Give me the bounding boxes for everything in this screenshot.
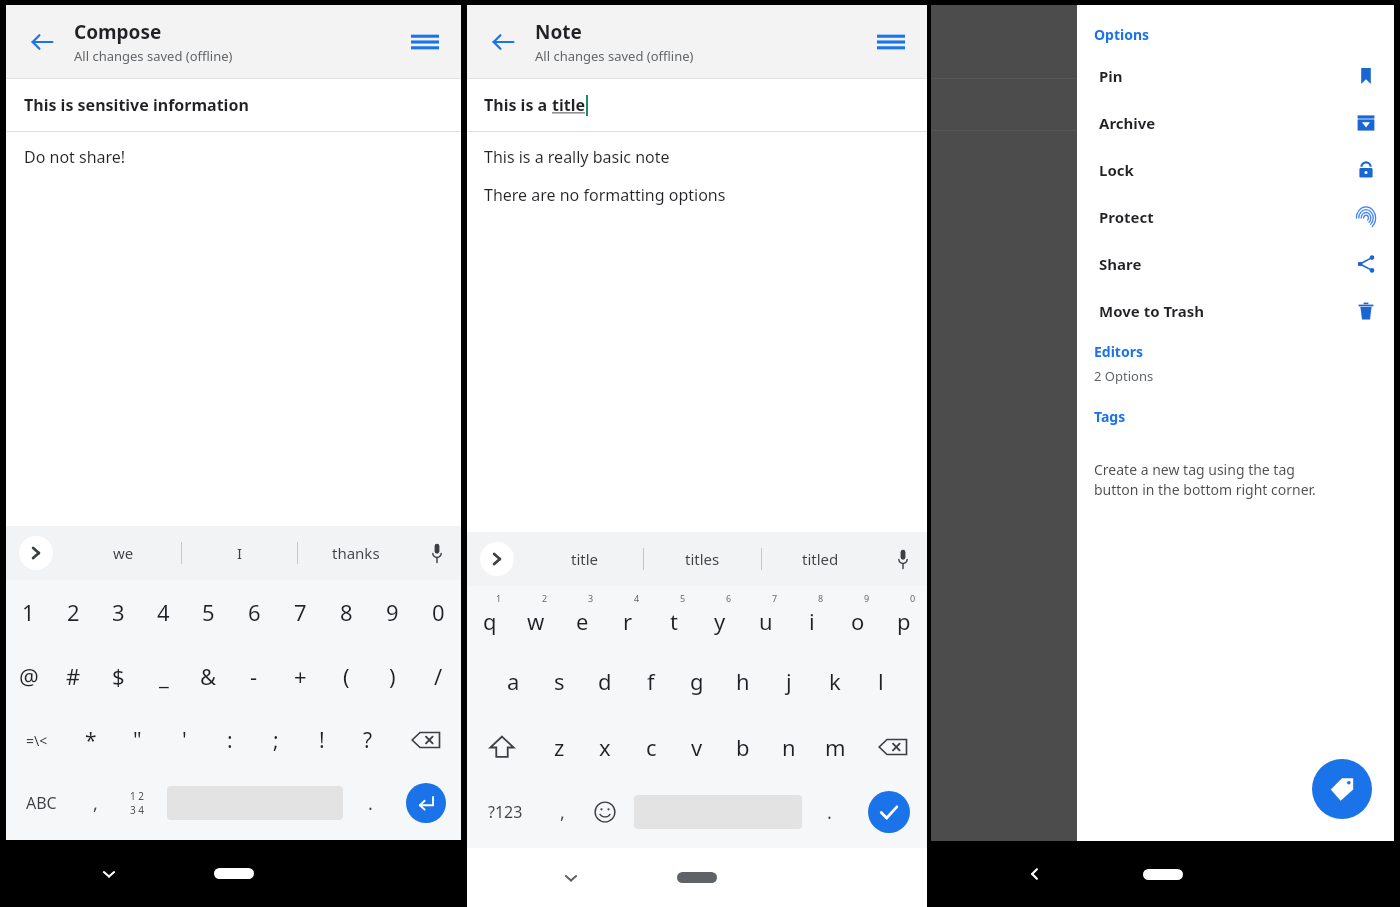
button[interactable]: & [186, 644, 231, 708]
button[interactable]: ?123 [467, 780, 543, 844]
button[interactable]: Backspace [391, 708, 461, 772]
button[interactable]: a [490, 648, 536, 714]
button[interactable]: x [582, 714, 628, 780]
button[interactable]: 2 [513, 586, 559, 648]
button[interactable]: , [76, 772, 114, 834]
button[interactable]: m [812, 714, 858, 780]
button[interactable]: Archive [1077, 99, 1394, 146]
button[interactable]: f [628, 648, 674, 714]
button[interactable]: title [527, 532, 643, 586]
button[interactable]: New tag [1312, 759, 1372, 819]
button[interactable]: 7 [277, 580, 323, 644]
button[interactable]: Lock [1077, 146, 1394, 193]
button[interactable]: Voice input [413, 526, 461, 580]
button[interactable]: ABC [6, 772, 76, 834]
button[interactable]: Pin [1077, 52, 1394, 99]
button[interactable]: Menu [869, 20, 913, 64]
button[interactable]: ( [323, 644, 369, 708]
button[interactable]: 1 [467, 586, 513, 648]
button[interactable]: Voice input [879, 532, 927, 586]
button[interactable]: 4 [605, 586, 651, 648]
button[interactable]: , [543, 780, 581, 844]
button[interactable]: - [231, 644, 277, 708]
button[interactable]: . [808, 780, 851, 844]
button[interactable]: g [674, 648, 720, 714]
button[interactable]: b [720, 714, 766, 780]
button[interactable]: we [66, 526, 181, 580]
button[interactable]: 8 [789, 586, 835, 648]
button[interactable]: ! [299, 708, 345, 772]
button[interactable]: Enter [391, 772, 461, 834]
button[interactable]: + [277, 644, 323, 708]
button[interactable]: ? [345, 708, 391, 772]
button[interactable]: Home [1143, 869, 1183, 880]
button[interactable]: ' [161, 708, 207, 772]
button[interactable]: v [674, 714, 720, 780]
button[interactable]: ; [253, 708, 299, 772]
button[interactable]: d [582, 648, 628, 714]
button[interactable]: Expand toolbar [6, 526, 66, 580]
button[interactable]: Protect [1077, 193, 1394, 240]
button[interactable]: @ [6, 644, 51, 708]
button[interactable]: 3 [559, 586, 605, 648]
staticText: 9 [864, 592, 870, 604]
button[interactable]: Home [214, 868, 254, 879]
button[interactable]: n [766, 714, 812, 780]
button[interactable]: Menu [403, 20, 447, 64]
button[interactable]: 6 [231, 580, 277, 644]
button[interactable]: Backspace [858, 714, 927, 780]
button[interactable]: Expand toolbar [467, 532, 527, 586]
button[interactable]: Back [481, 20, 525, 64]
staticText: This is sensitive information [24, 94, 249, 116]
button[interactable]: 7 [743, 586, 789, 648]
button[interactable]: 5 [651, 586, 697, 648]
button[interactable]: 0 [881, 586, 927, 648]
button[interactable]: 5 [186, 580, 231, 644]
button[interactable]: _ [141, 644, 186, 708]
button[interactable]: 9 [369, 580, 415, 644]
button[interactable]: * [67, 708, 114, 772]
staticText: - [250, 661, 258, 691]
button[interactable]: 9 [835, 586, 881, 648]
button[interactable]: / [415, 644, 461, 708]
button[interactable]: 0 [415, 580, 461, 644]
button[interactable]: j [766, 648, 812, 714]
button[interactable]: Back [931, 841, 1139, 907]
button[interactable]: $ [96, 644, 141, 708]
button[interactable]: 6 [697, 586, 743, 648]
button[interactable]: titled [762, 532, 879, 586]
button[interactable]: =\< [6, 708, 67, 772]
button[interactable]: k [812, 648, 858, 714]
button[interactable]: 2 [51, 580, 96, 644]
button[interactable]: : [207, 708, 253, 772]
button[interactable]: Hide keyboard [6, 840, 211, 907]
button[interactable]: l [858, 648, 904, 714]
button[interactable]: . [349, 772, 391, 834]
button[interactable]: 4 [141, 580, 186, 644]
button[interactable]: ) [369, 644, 415, 708]
button[interactable]: 8 [323, 580, 369, 644]
button[interactable]: # [51, 644, 96, 708]
button[interactable]: c [628, 714, 674, 780]
button[interactable]: 1 2 [114, 772, 161, 834]
button[interactable]: s [536, 648, 582, 714]
button[interactable]: h [720, 648, 766, 714]
button[interactable]: Share [1077, 240, 1394, 287]
button[interactable]: Hide keyboard [467, 848, 674, 907]
button[interactable]: Shift [467, 714, 536, 780]
button[interactable]: thanks [298, 526, 413, 580]
button[interactable]: Emoji [581, 780, 628, 844]
button[interactable]: titles [644, 532, 761, 586]
button[interactable]: 1 [6, 580, 51, 644]
button[interactable]: Home [677, 872, 717, 883]
button[interactable]: Back [20, 20, 64, 64]
button[interactable]: " [114, 708, 161, 772]
button[interactable]: I [182, 526, 297, 580]
button[interactable]: Move to Trash [1077, 287, 1394, 334]
button[interactable]: Done [851, 780, 927, 844]
button[interactable]: z [536, 714, 582, 780]
button[interactable]: 3 [96, 580, 141, 644]
